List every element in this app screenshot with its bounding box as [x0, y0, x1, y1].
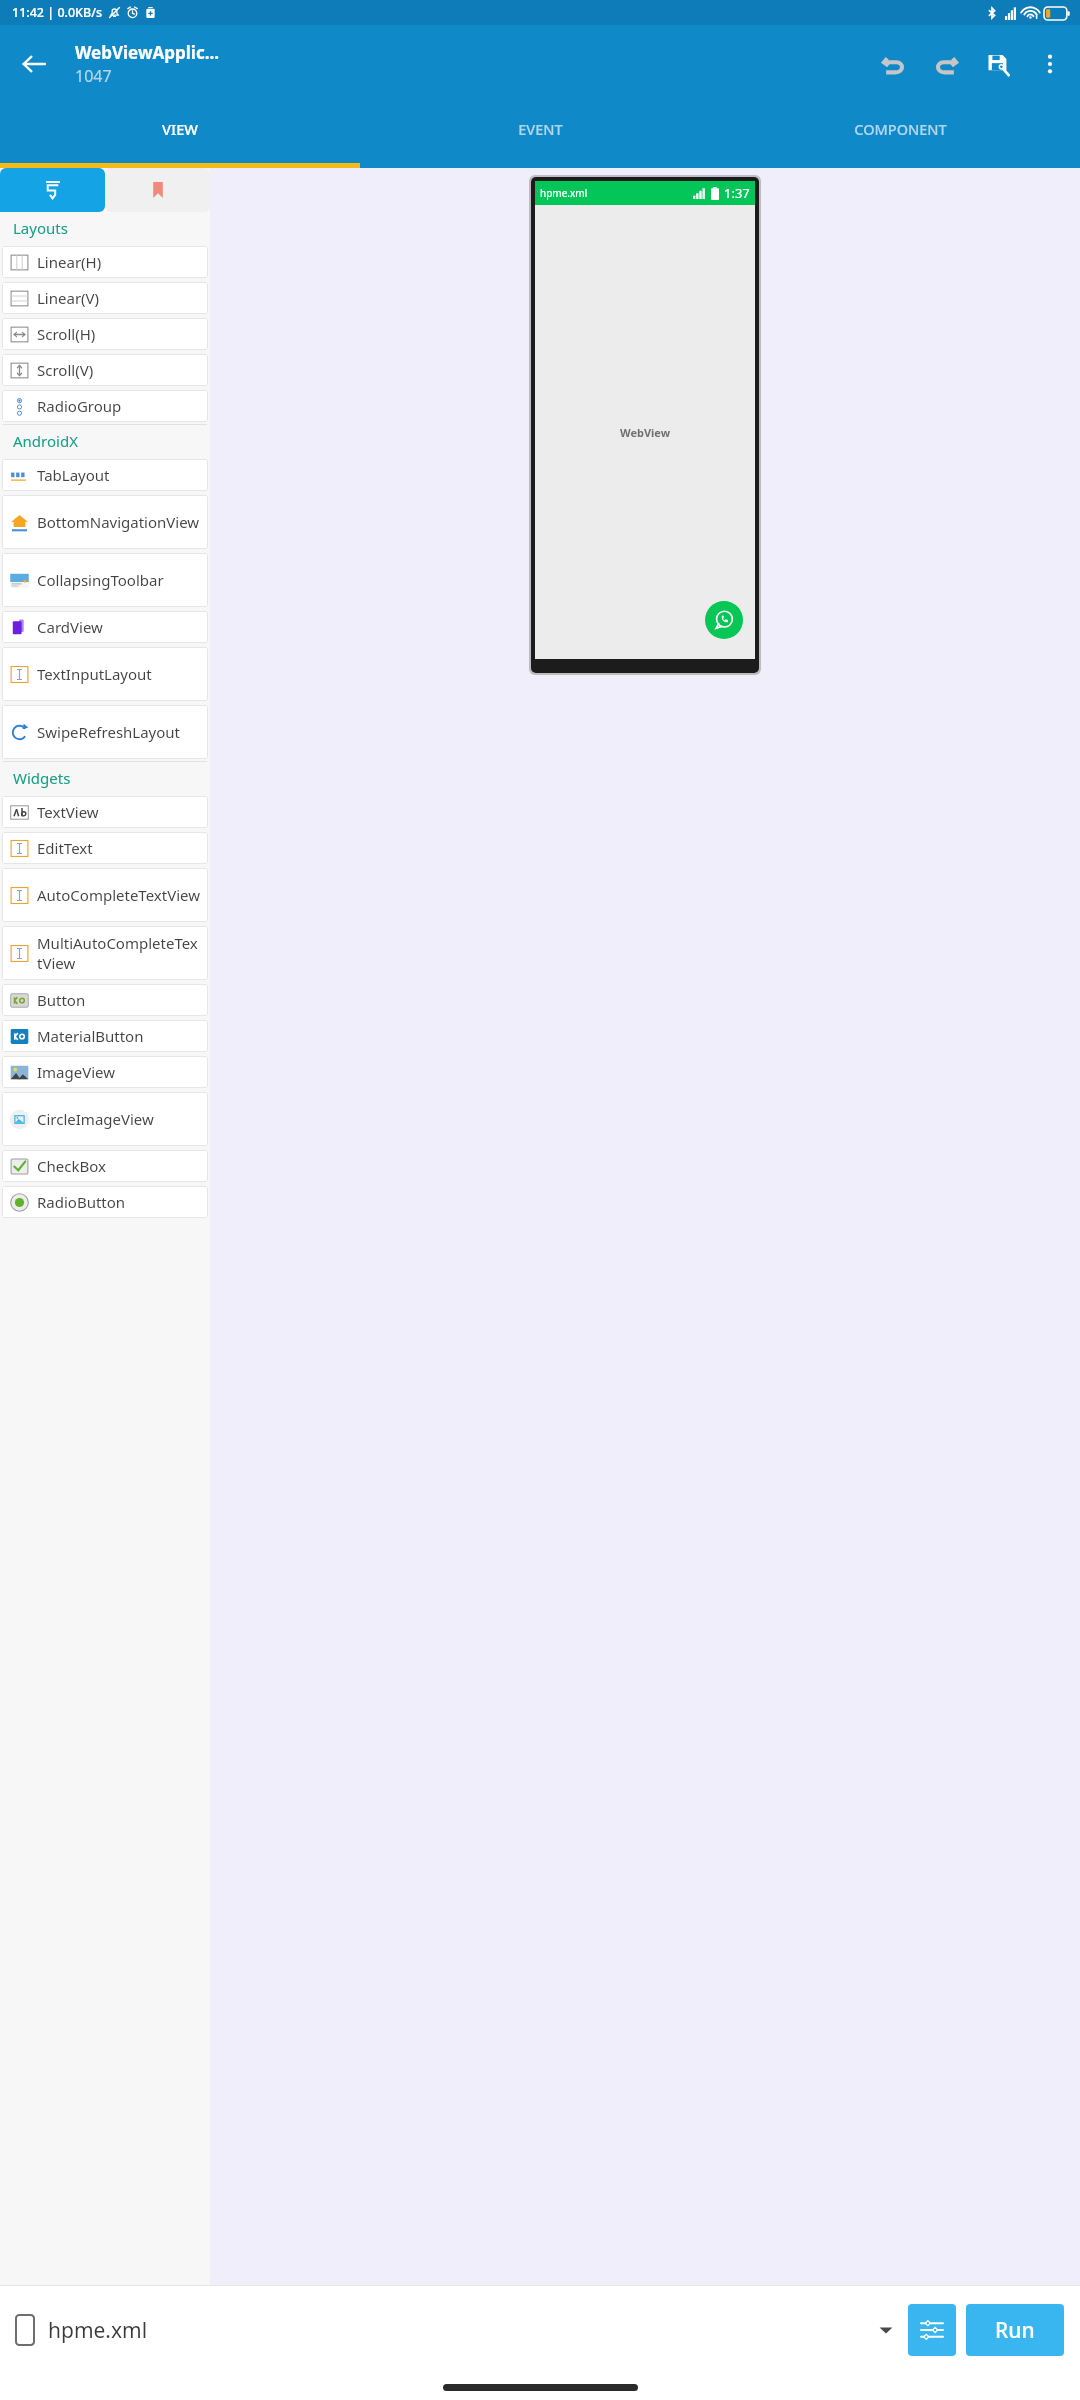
staticText: Linear(H)	[37, 252, 102, 272]
staticText: CheckBox	[37, 1156, 106, 1176]
button[interactable]: Settings	[908, 2304, 956, 2356]
button[interactable]: More options	[1024, 38, 1076, 90]
staticText: VIEW	[162, 119, 198, 139]
button[interactable]: SwipeRefreshLayout	[2, 705, 208, 759]
staticText: 11:42 | 0.0KB/s	[12, 4, 103, 21]
staticText: ImageView	[37, 1062, 116, 1082]
staticText: TextInputLayout	[37, 664, 152, 684]
staticText: MaterialButton	[37, 1026, 144, 1046]
staticText: EditText	[37, 838, 93, 858]
staticText: CircleImageView	[37, 1109, 154, 1129]
staticText: AutoCompleteTextView	[37, 885, 200, 905]
staticText: CardView	[37, 617, 103, 637]
button[interactable]: AutoCompleteTextView	[2, 868, 208, 922]
staticText: SwipeRefreshLayout	[37, 722, 181, 742]
button[interactable]: CircleImageView	[2, 1092, 208, 1146]
staticText: hpme.xml	[48, 2316, 148, 2345]
button[interactable]: EVENT	[360, 103, 720, 155]
button[interactable]: Linear(H)	[2, 246, 208, 278]
staticText: Run	[995, 2316, 1035, 2345]
staticText: COMPONENT	[854, 119, 947, 139]
staticText: 1:37	[724, 184, 750, 202]
button[interactable]: WhatsApp	[705, 601, 743, 639]
staticText: TabLayout	[37, 465, 110, 485]
staticText: EVENT	[518, 119, 563, 139]
staticText: CollapsingToolbar	[37, 570, 164, 590]
button[interactable]: CollapsingToolbar	[2, 553, 208, 607]
button[interactable]: Save	[972, 38, 1024, 90]
button[interactable]: ImageView	[2, 1056, 208, 1088]
button[interactable]: Redo	[920, 38, 972, 90]
button[interactable]: Linear(V)	[2, 282, 208, 314]
staticText: Scroll(H)	[37, 324, 96, 344]
staticText: Widgets	[13, 768, 71, 788]
button[interactable]: Scroll(V)	[2, 354, 208, 386]
button[interactable]: MaterialButton	[2, 1020, 208, 1052]
staticText: Linear(V)	[37, 288, 100, 308]
button[interactable]: CheckBox	[2, 1150, 208, 1182]
button[interactable]: Undo	[868, 38, 920, 90]
button[interactable]: VIEW	[0, 103, 360, 155]
button[interactable]: RadioButton	[2, 1186, 208, 1218]
staticText: RadioGroup	[37, 396, 122, 416]
staticText: WebView	[620, 425, 671, 440]
button[interactable]: Back	[8, 38, 60, 90]
button[interactable]: BottomNavigationView	[2, 495, 208, 549]
staticText: MultiAutoCompleteTextView	[37, 933, 203, 973]
staticText: Scroll(V)	[37, 360, 94, 380]
button[interactable]: Button	[2, 984, 208, 1016]
button[interactable]: EditText	[2, 832, 208, 864]
button[interactable]: hpme.xml	[16, 2286, 908, 2374]
staticText: AndroidX	[13, 431, 78, 451]
staticText: BottomNavigationView	[37, 512, 200, 532]
staticText: 1047	[75, 65, 112, 87]
staticText: hpme.xml	[540, 186, 588, 200]
staticText: Layouts	[13, 218, 68, 238]
button[interactable]: TabLayout	[2, 459, 208, 491]
staticText: Button	[37, 990, 86, 1010]
staticText: WebViewApplic...	[75, 41, 219, 64]
staticText: RadioButton	[37, 1192, 126, 1212]
staticText: TextView	[37, 802, 99, 822]
button[interactable]: Run	[966, 2304, 1064, 2356]
button[interactable]: RadioGroup	[2, 390, 208, 422]
button[interactable]: COMPONENT	[720, 103, 1080, 155]
button[interactable]: Widgets palette	[0, 168, 105, 212]
button[interactable]: TextInputLayout	[2, 647, 208, 701]
button[interactable]: Scroll(H)	[2, 318, 208, 350]
button[interactable]: TextView	[2, 796, 208, 828]
button[interactable]: MultiAutoCompleteTextView	[2, 926, 208, 980]
button[interactable]: Favourites	[105, 168, 210, 212]
button[interactable]: CardView	[2, 611, 208, 643]
